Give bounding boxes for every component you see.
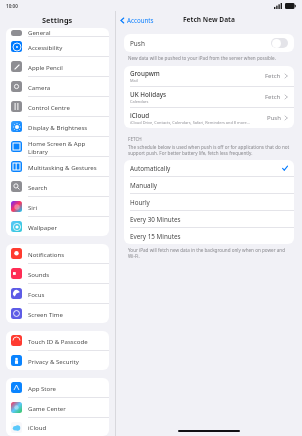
other: Push toggle, off [271,38,288,48]
button[interactable]: App Store [6,378,109,397]
staticText: Display & Brightness [28,123,88,131]
staticText: iCloud Drive, Contacts, Calendars, Safar… [130,120,250,125]
staticText: Notifications [28,250,65,258]
staticText: Fetch New Data [183,15,235,24]
staticText: Screen Time [28,310,63,318]
staticText: 10:00 [6,3,18,9]
button[interactable]: Siri [6,197,109,216]
staticText: Automatically [130,164,171,173]
staticText: Wallpaper [28,223,57,231]
staticText: Push [130,39,145,48]
staticText: Siri [28,203,38,211]
staticText: Mail [130,78,138,83]
staticText: Your iPad will fetch new data in the bac… [128,247,290,259]
button[interactable]: Push [124,34,294,52]
staticText: Settings [42,15,73,25]
button[interactable]: Home Screen & App Library [6,137,109,156]
button[interactable]: Notifications [6,244,109,263]
button[interactable]: Multitasking & Gestures [6,157,109,176]
staticText: Search [28,183,48,191]
button[interactable]: Control Centre [6,97,109,116]
button[interactable]: Game Center [6,398,109,417]
staticText: UK Holidays [130,90,167,99]
staticText: Calendars [130,99,149,104]
button[interactable]: Manually [124,177,294,193]
button[interactable]: Screen Time [6,304,109,323]
button[interactable]: iCloud [6,418,109,436]
button[interactable]: Every 30 Minutes [124,211,294,227]
button[interactable]: Automatically [124,160,294,176]
button[interactable]: Wallpaper [6,217,109,236]
staticText: Accounts [127,16,154,24]
staticText: App Store [28,384,57,392]
staticText: iCloud [130,111,150,120]
button[interactable]: General [6,28,109,36]
staticText: Home Screen & App Library [28,139,104,155]
staticText: General [28,28,51,36]
button[interactable]: Display & Brightness [6,117,109,136]
staticText: New data will be pushed to your iPad fro… [128,55,276,61]
staticText: Manually [130,181,158,190]
button[interactable]: Touch ID & Passcode [6,331,109,350]
staticText: Groupwm [130,69,160,78]
staticText: Camera [28,83,51,91]
button[interactable]: Groupwm [124,66,294,86]
button[interactable]: iCloud [124,108,294,128]
button[interactable]: Search [6,177,109,196]
button[interactable]: Apple Pencil [6,57,109,76]
button[interactable]: Camera [6,77,109,96]
staticText: Every 15 Minutes [130,232,181,241]
staticText: Game Center [28,404,66,412]
staticText: Focus [28,290,45,298]
staticText: Touch ID & Passcode [28,337,88,345]
staticText: Control Centre [28,103,70,111]
staticText: Hourly [130,198,150,207]
staticText: Fetch [265,72,281,80]
staticText: Fetch [265,93,281,101]
button[interactable]: Privacy & Security [6,351,109,370]
staticText: Sounds [28,270,50,278]
button[interactable]: Accounts [116,14,158,26]
staticText: iCloud [28,423,47,431]
staticText: Accessibility [28,43,63,51]
staticText: FETCH [128,136,142,142]
staticText: Multitasking & Gestures [28,163,97,171]
staticText: Apple Pencil [28,63,63,71]
staticText: Every 30 Minutes [130,215,181,224]
button[interactable]: Accessibility [6,37,109,56]
button[interactable]: Focus [6,284,109,303]
button[interactable]: UK Holidays [124,87,294,107]
staticText: Privacy & Security [28,357,79,365]
button[interactable]: Every 15 Minutes [124,228,294,244]
button[interactable]: Hourly [124,194,294,210]
staticText: The schedule below is used when push is … [128,144,290,156]
staticText: Push [267,114,281,122]
button[interactable]: Sounds [6,264,109,283]
